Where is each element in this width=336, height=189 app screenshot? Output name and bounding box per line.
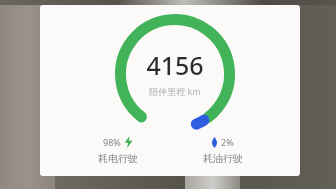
other: Electric bbox=[124, 136, 133, 148]
staticText: 4156 bbox=[146, 48, 204, 82]
staticText: 98% bbox=[103, 136, 121, 148]
other: Fuel bbox=[211, 137, 218, 148]
button[interactable]: Fuel bbox=[170, 136, 275, 165]
staticText: 耗油行驶 bbox=[203, 152, 243, 165]
button[interactable]: 98% bbox=[65, 136, 170, 165]
staticText: 耗电行驶 bbox=[98, 152, 138, 165]
staticText: 2% bbox=[221, 136, 234, 148]
staticText: 陪伴里程 km bbox=[149, 85, 201, 97]
button[interactable]: 4156 bbox=[40, 5, 300, 176]
